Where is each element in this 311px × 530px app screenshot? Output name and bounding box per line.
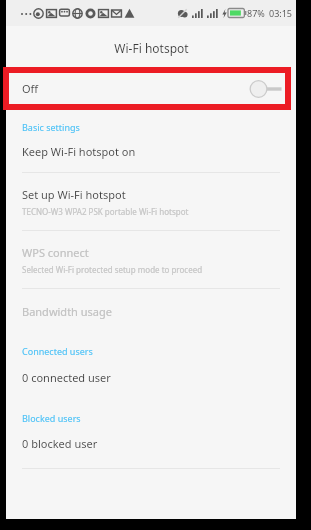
- button[interactable]: WPS connect: [6, 245, 296, 260]
- staticText: TECNO-W3 WPA2 PSK portable Wi-Fi hotspot: [22, 206, 189, 217]
- staticText: Blocked users: [22, 412, 81, 424]
- button[interactable]: Toggle Wi-Fi hotspot: [247, 78, 283, 100]
- button[interactable]: 0 blocked user: [6, 436, 296, 451]
- staticText: Wi-Fi hotspot: [114, 40, 189, 56]
- button[interactable]: Off: [6, 70, 296, 107]
- staticText: Set up Wi-Fi hotspot: [22, 187, 126, 202]
- staticText: Keep Wi-Fi hotspot on: [22, 144, 136, 159]
- staticText: Connected users: [22, 345, 93, 357]
- button[interactable]: Set up Wi-Fi hotspot: [6, 187, 296, 202]
- staticText: Bandwidth usage: [22, 304, 112, 319]
- staticText: 03:15: [269, 7, 293, 19]
- button[interactable]: Keep Wi-Fi hotspot on: [6, 144, 296, 159]
- staticText: 87%: [247, 7, 265, 19]
- button[interactable]: Bandwidth usage: [6, 304, 296, 319]
- staticText: Basic settings: [22, 121, 80, 133]
- button[interactable]: 0 connected user: [6, 370, 296, 385]
- staticText: Off: [22, 81, 39, 96]
- staticText: WPS connect: [22, 245, 89, 260]
- staticText: Selected Wi-Fi protected setup mode to p…: [22, 264, 203, 275]
- staticText: 0 blocked user: [22, 436, 98, 451]
- staticText: 0 connected user: [22, 370, 111, 385]
